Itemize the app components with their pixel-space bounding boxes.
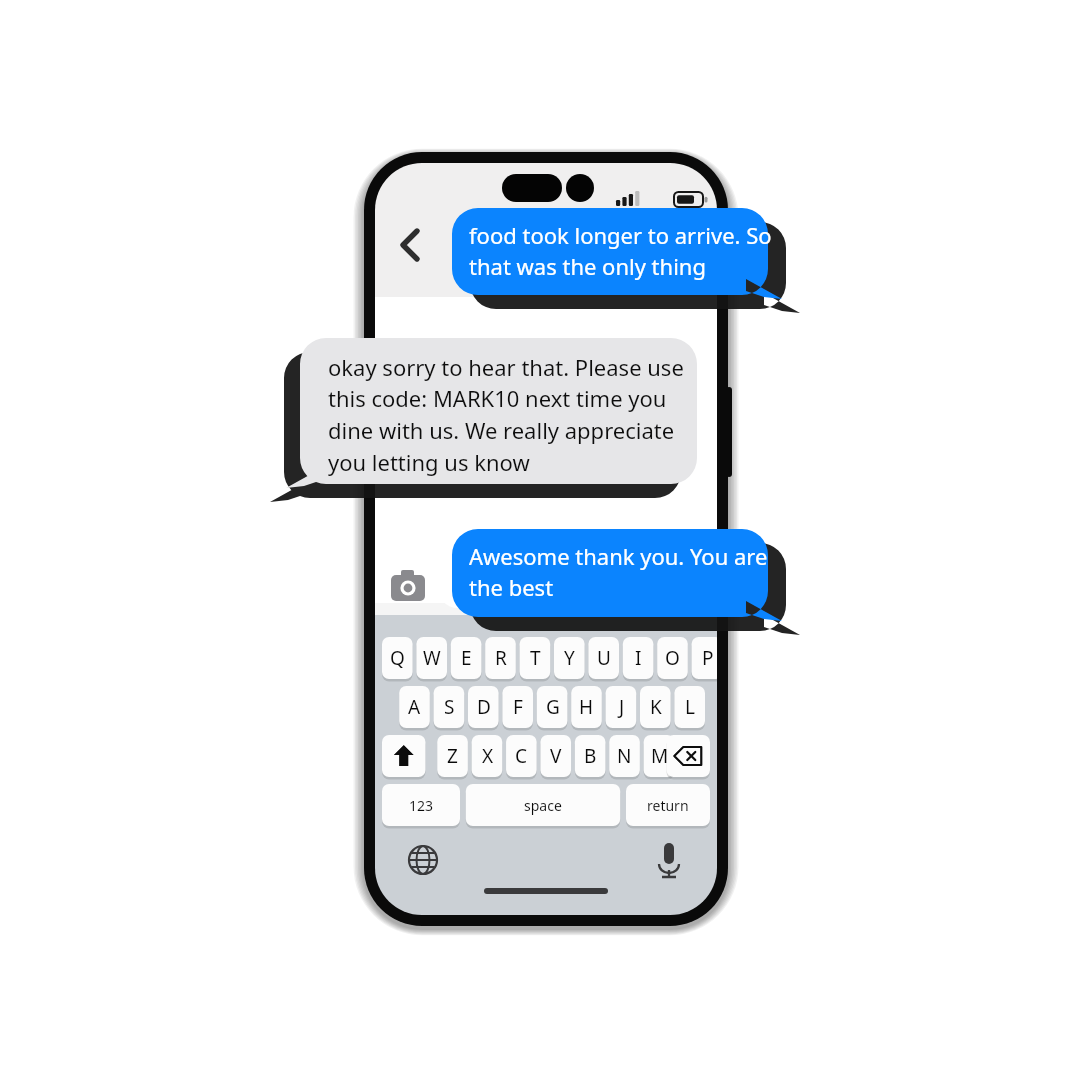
button[interactable]: Q (382, 637, 413, 679)
button[interactable]: G (537, 686, 568, 728)
button[interactable]: B (575, 735, 606, 777)
staticText: A (408, 694, 421, 720)
staticText: E (461, 645, 472, 671)
staticText: 123 (409, 796, 434, 815)
button[interactable]: Switch keyboard (398, 858, 448, 908)
button[interactable]: 123 (382, 784, 460, 826)
button[interactable]: R (485, 637, 516, 679)
staticText: X (482, 743, 494, 769)
staticText: food took longer to arrive. So that was … (469, 220, 772, 282)
button[interactable]: C (506, 735, 537, 777)
button[interactable]: okay sorry to hear that. Please use this… (328, 352, 684, 478)
staticText: W (423, 645, 441, 671)
staticText: H (579, 694, 594, 720)
staticText: U (597, 645, 611, 671)
button[interactable]: P (692, 637, 723, 679)
staticText: N (617, 743, 632, 769)
button[interactable]: W (416, 637, 447, 679)
button[interactable]: Camera (386, 606, 430, 652)
staticText: K (650, 694, 662, 720)
staticText: L (685, 694, 695, 720)
staticText: J (619, 694, 625, 720)
staticText: Z (447, 743, 458, 769)
staticText: C (515, 743, 528, 769)
button[interactable]: space (466, 784, 620, 826)
button[interactable]: Dictate (650, 858, 700, 908)
button[interactable]: O (657, 637, 688, 679)
button[interactable]: S (434, 686, 465, 728)
staticText: M (651, 743, 669, 769)
button[interactable]: I (623, 637, 654, 679)
button[interactable]: U (588, 637, 619, 679)
button[interactable]: L (674, 686, 705, 728)
button[interactable]: Send (663, 606, 711, 652)
staticText: G (546, 694, 560, 720)
staticText: okay sorry to hear that. Please use this… (328, 352, 684, 478)
staticText: return (647, 796, 689, 815)
staticText: P (702, 645, 714, 671)
staticText: space (524, 796, 562, 815)
staticText: O (665, 645, 680, 671)
button[interactable]: food took longer to arrive. So that was … (469, 220, 772, 282)
staticText: T (530, 645, 541, 671)
staticText: F (513, 694, 523, 720)
button[interactable]: Back (375, 200, 435, 270)
staticText: Q (390, 645, 405, 671)
button[interactable]: T (520, 637, 551, 679)
button[interactable]: D (468, 686, 499, 728)
staticText: R (495, 645, 507, 671)
staticText: B (584, 743, 597, 769)
button[interactable]: H (571, 686, 602, 728)
button[interactable]: F (502, 686, 533, 728)
staticText: S (444, 694, 455, 720)
button[interactable]: N (609, 735, 640, 777)
button[interactable]: M (644, 735, 675, 777)
button[interactable]: V (540, 735, 571, 777)
button[interactable]: E (451, 637, 482, 679)
button[interactable]: Z (437, 735, 468, 777)
button[interactable]: J (606, 686, 637, 728)
button[interactable]: Awesome thank you. You are the best (469, 541, 768, 603)
staticText: Y (564, 645, 575, 671)
staticText: D (477, 694, 491, 720)
button[interactable]: X (472, 735, 503, 777)
staticText: I (635, 645, 642, 671)
button[interactable]: K (640, 686, 671, 728)
staticText: V (550, 743, 562, 769)
button[interactable]: Y (554, 637, 585, 679)
button[interactable]: return (626, 784, 710, 826)
button[interactable]: A (399, 686, 430, 728)
staticText: Awesome thank you. You are the best (469, 541, 768, 603)
